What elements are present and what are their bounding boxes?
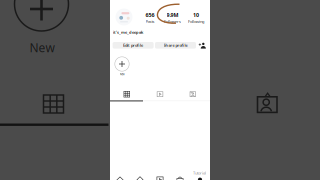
staticText: Followers [164, 19, 181, 24]
staticText: Posts [145, 19, 154, 24]
staticText: Share profile [163, 43, 187, 48]
staticText: Edit profile [123, 43, 143, 48]
button[interactable]: Search [130, 176, 150, 180]
button[interactable]: 656 [138, 11, 162, 24]
button[interactable]: Edit profile [113, 42, 154, 49]
button[interactable]: 9.9M [160, 11, 184, 24]
staticText: New [119, 72, 124, 76]
button[interactable]: Profile [190, 178, 210, 180]
staticText: New [29, 39, 54, 55]
button[interactable]: New [112, 57, 132, 76]
button[interactable]: Home [110, 176, 130, 180]
button[interactable]: Add person [198, 42, 206, 49]
button[interactable]: Grid [124, 91, 130, 97]
button[interactable]: Shop [170, 176, 190, 180]
button[interactable]: Reels [157, 91, 163, 97]
staticText: it's_me_deepak [113, 30, 143, 35]
button[interactable]: Tagged [190, 91, 196, 97]
button[interactable]: Share profile [155, 42, 196, 49]
button[interactable]: Reels [150, 176, 170, 180]
staticText: 9.9M [166, 11, 178, 18]
staticText: Following [188, 19, 204, 24]
button[interactable]: New [0, 41, 84, 54]
staticText: 10 [193, 11, 199, 18]
button[interactable]: 10 [184, 11, 208, 24]
staticText: Tutorial [193, 170, 206, 176]
staticText: 656 [145, 11, 154, 18]
